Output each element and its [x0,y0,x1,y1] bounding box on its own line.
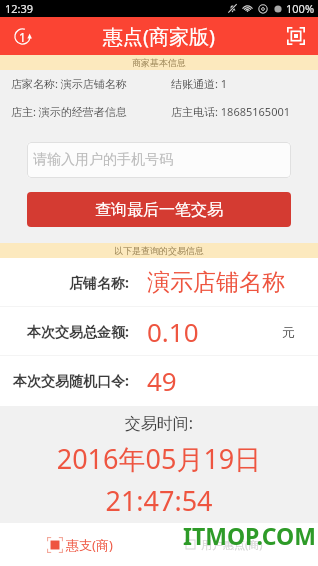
staticText: 1 [19,29,26,45]
staticText: 惠点(商家版) [103,23,215,50]
staticText: 演示店铺名称 [147,268,285,297]
staticText: 12:39 [5,1,34,16]
button[interactable]: 惠支(商) [0,523,159,566]
button[interactable]: 用户惠点(商) [143,523,302,566]
staticText: 交易时间: [0,412,318,434]
staticText: 店家名称: 演示店铺名称 [11,76,127,91]
staticText: 以下是查询的交易信息 [114,245,204,256]
staticText: 店主: 演示的经营者信息 [11,104,127,119]
button[interactable]: 请输入用户的手机号码 [27,142,291,178]
staticText: 元 [282,324,295,340]
button[interactable]: 查询最后一笔交易 [27,192,291,227]
staticText: 惠支(商) [66,536,113,554]
staticText: 本次交易随机口令: [0,371,129,390]
staticText: ITMOP.COM [183,520,316,551]
staticText: 商家基本信息 [132,57,186,68]
staticText: 本次交易总金额: [0,322,129,341]
button[interactable]: Refresh [0,17,44,55]
staticText: 100% [286,1,315,16]
button[interactable]: Scan QR code [274,17,318,55]
staticText: 店铺名称: [0,273,129,292]
staticText: 请输入用户的手机号码 [33,151,173,169]
staticText: 查询最后一笔交易 [95,200,223,220]
staticText: 用户惠点(商) [201,537,263,552]
staticText: 49 [147,363,177,398]
staticText: 21:47:54 [0,482,318,519]
staticText: 店主电话: 18685165001 [171,104,291,119]
staticText: 结账通道: 1 [171,76,228,91]
staticText: 2016年05月19日 [0,440,318,477]
staticText: 0.10 [147,314,199,349]
